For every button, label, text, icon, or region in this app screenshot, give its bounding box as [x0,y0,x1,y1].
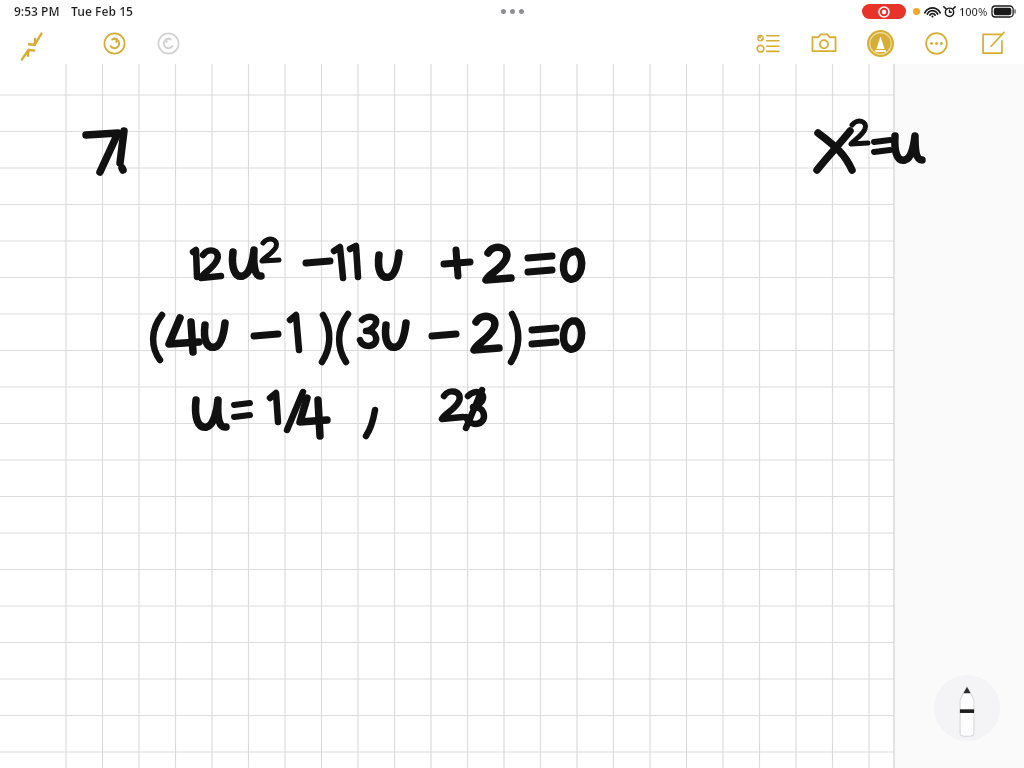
button[interactable]: Checklist [748,23,788,63]
button[interactable]: More options [916,23,956,63]
button[interactable]: Redo [150,25,186,61]
staticText: 9:53 PM [14,3,60,19]
button[interactable]: Camera [804,23,844,63]
staticText: Tue Feb 15 [71,3,133,19]
button[interactable]: Pen tool [860,23,900,63]
button[interactable]: Undo [96,25,132,61]
button[interactable]: Apple Pencil tool [934,675,1000,741]
button[interactable]: Collapse [14,25,50,61]
staticText: 100% [959,4,988,19]
button[interactable]: Edit [972,23,1012,63]
